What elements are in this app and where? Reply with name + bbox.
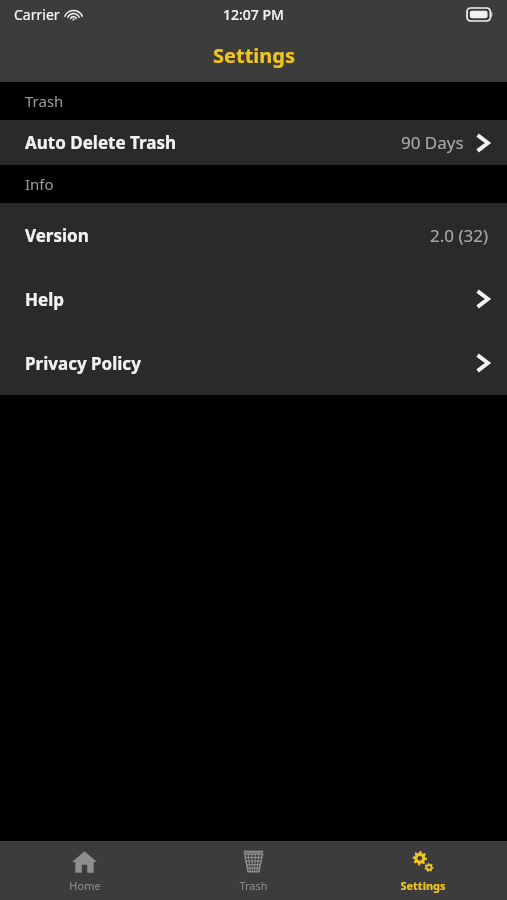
staticText: Home [69, 878, 101, 893]
staticText: 12:07 PM [223, 5, 284, 24]
button[interactable]: Version [0, 203, 507, 267]
staticText: Auto Delete Trash [25, 131, 176, 154]
staticText: Help [25, 288, 64, 311]
staticText: Privacy Policy [25, 352, 141, 375]
button[interactable]: Trash [169, 841, 338, 900]
staticText: Settings [400, 878, 446, 893]
button[interactable]: Home [0, 841, 169, 900]
staticText: Carrier [14, 5, 60, 24]
staticText: Settings [213, 42, 295, 69]
staticText: 2.0 (32) [430, 224, 489, 247]
staticText: 90 Days [401, 131, 464, 154]
staticText: Version [25, 224, 89, 247]
button[interactable]: Help [0, 267, 507, 331]
staticText: Trash [239, 878, 268, 893]
button[interactable]: Auto Delete Trash [0, 120, 507, 165]
staticText: Info [25, 174, 54, 194]
staticText: Trash [25, 91, 64, 111]
button[interactable]: Privacy Policy [0, 331, 507, 395]
button[interactable]: Settings [338, 841, 507, 900]
